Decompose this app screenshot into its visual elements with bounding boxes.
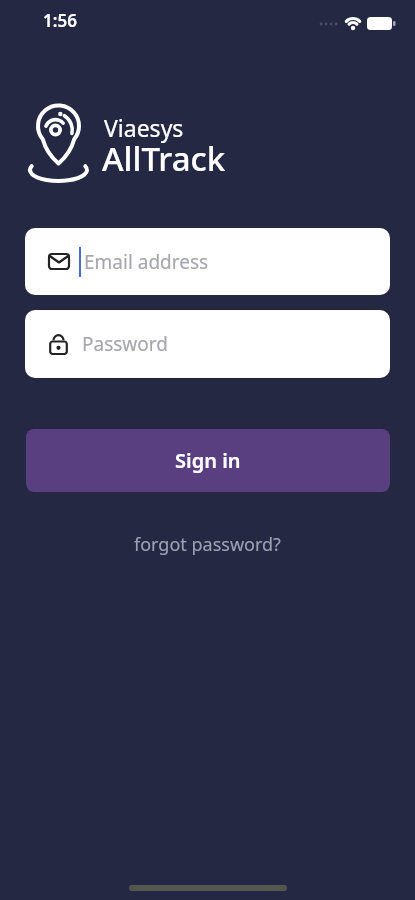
staticText: Sign in [175,447,241,474]
staticText: Email address [84,249,209,275]
button[interactable]: Email address [25,228,390,295]
staticText: Password [82,331,168,357]
staticText: AllTrack [102,136,226,181]
button[interactable]: forgot password? [126,528,289,561]
staticText: forgot password? [134,532,281,557]
staticText: Viaesys [104,112,184,143]
button[interactable]: Password [25,310,390,378]
staticText: 1:56 [43,9,77,32]
button[interactable]: Sign in [26,429,390,492]
